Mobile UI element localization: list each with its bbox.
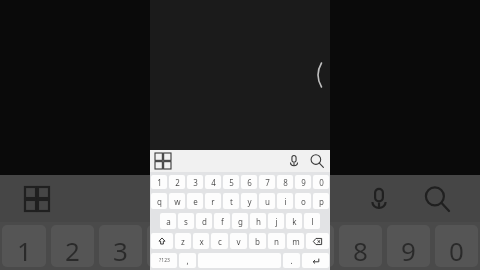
button[interactable]: p [313, 193, 329, 209]
button[interactable]: q [151, 193, 167, 209]
button[interactable]: 3 [99, 225, 142, 267]
staticText: 4 [211, 177, 216, 188]
staticText: t [230, 196, 233, 207]
button[interactable]: 2 [169, 175, 185, 189]
staticText: 6 [247, 177, 252, 188]
button[interactable]: 0 [435, 225, 478, 267]
button[interactable]: Voice input [364, 184, 394, 214]
staticText: 2 [175, 177, 180, 188]
button[interactable]: c [211, 233, 228, 249]
button[interactable]: Keyboard layouts [155, 153, 171, 169]
button[interactable]: a [160, 213, 176, 229]
staticText: j [275, 216, 278, 227]
button[interactable]: x [193, 233, 209, 249]
button[interactable]: ?123 [151, 253, 177, 268]
button[interactable]: s [178, 213, 194, 229]
button[interactable]: j [268, 213, 284, 229]
staticText: 0 [449, 233, 464, 267]
button[interactable]: 9 [295, 175, 311, 189]
button[interactable]: d [196, 213, 212, 229]
button[interactable]: Keyboard layouts [25, 187, 49, 211]
staticText: v [236, 236, 241, 247]
staticText: x [199, 236, 204, 247]
button[interactable]: 4 [147, 225, 190, 267]
button[interactable]: 8 [277, 175, 293, 189]
button[interactable]: 1 [151, 175, 167, 189]
button[interactable]: Backspace [306, 233, 329, 249]
button[interactable]: Shift [151, 233, 173, 249]
staticText: 5 [229, 177, 234, 188]
staticText: m [292, 236, 300, 247]
staticText: 1 [157, 177, 162, 188]
button[interactable]: h [250, 213, 266, 229]
button[interactable]: 6 [243, 225, 286, 267]
button[interactable]: 2 [51, 225, 94, 267]
button[interactable]: o [295, 193, 311, 209]
button[interactable]: y [241, 193, 257, 209]
button[interactable]: Search [422, 184, 452, 214]
staticText: 9 [401, 233, 416, 267]
staticText: ?123 [159, 257, 170, 264]
staticText: q [157, 196, 162, 207]
button[interactable]: t [223, 193, 239, 209]
button[interactable]: b [249, 233, 266, 249]
button[interactable]: v [230, 233, 247, 249]
staticText: c [218, 236, 222, 247]
button[interactable]: 1 [2, 225, 46, 267]
button[interactable]: 5 [195, 225, 238, 267]
staticText: k [292, 216, 297, 227]
button[interactable]: g [232, 213, 248, 229]
button[interactable]: 4 [205, 175, 221, 189]
staticText: 5 [209, 233, 224, 267]
button[interactable]: 6 [241, 175, 257, 189]
staticText: n [274, 236, 279, 247]
staticText: 1 [17, 233, 32, 267]
staticText: r [211, 196, 215, 207]
button[interactable]: , [179, 253, 196, 268]
button[interactable]: 0 [313, 175, 329, 189]
staticText: 3 [193, 177, 198, 188]
staticText: . [290, 255, 293, 266]
button[interactable]: 9 [387, 225, 430, 267]
staticText: i [284, 196, 287, 207]
staticText: s [184, 216, 188, 227]
button[interactable]: Enter [302, 253, 329, 268]
staticText: a [166, 216, 171, 227]
button[interactable]: k [286, 213, 302, 229]
staticText: 7 [265, 177, 270, 188]
staticText: b [255, 236, 260, 247]
staticText: , [186, 255, 189, 266]
button[interactable]: u [259, 193, 275, 209]
button[interactable]: . [283, 253, 300, 268]
button[interactable]: Voice input [286, 153, 302, 169]
staticText: 8 [283, 177, 288, 188]
button[interactable]: l [304, 213, 320, 229]
button[interactable]: f [214, 213, 230, 229]
staticText: 4 [161, 233, 176, 267]
button[interactable]: m [287, 233, 304, 249]
button[interactable]: r [205, 193, 221, 209]
staticText: 8 [353, 233, 368, 267]
button[interactable]: 7 [291, 225, 334, 267]
button[interactable]: i [277, 193, 293, 209]
button[interactable]: 5 [223, 175, 239, 189]
button[interactable]: w [169, 193, 185, 209]
button[interactable]: 3 [187, 175, 203, 189]
button[interactable]: e [187, 193, 203, 209]
staticText: z [181, 236, 185, 247]
button[interactable]: z [175, 233, 191, 249]
button[interactable]: Search [309, 153, 325, 169]
button[interactable]: n [268, 233, 285, 249]
staticText: o [301, 196, 306, 207]
staticText: p [319, 196, 324, 207]
staticText: w [174, 196, 181, 207]
staticText: 9 [301, 177, 306, 188]
button[interactable]: 8 [339, 225, 382, 267]
staticText: 0 [319, 177, 324, 188]
staticText: u [265, 196, 270, 207]
button[interactable]: 7 [259, 175, 275, 189]
staticText: y [247, 196, 252, 207]
staticText: 3 [113, 233, 128, 267]
staticText: 6 [257, 233, 272, 267]
